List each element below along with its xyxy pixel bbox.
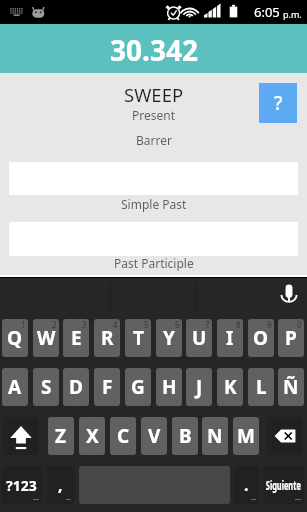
button[interactable]: D xyxy=(63,368,89,406)
staticText: P xyxy=(285,325,297,351)
staticText: 9 xyxy=(267,319,272,330)
button[interactable]: C xyxy=(110,417,136,455)
button[interactable]: H xyxy=(156,368,182,406)
button[interactable]: Q xyxy=(2,319,28,357)
staticText: 4 xyxy=(113,319,118,330)
staticText: SWEEP xyxy=(124,82,184,107)
button[interactable]: Backspace xyxy=(267,417,303,455)
staticText: K xyxy=(224,374,237,400)
button[interactable]: L xyxy=(248,368,274,406)
button[interactable]: Ñ xyxy=(278,368,304,406)
button[interactable]: I xyxy=(217,319,243,357)
button[interactable]: N xyxy=(202,417,228,455)
button[interactable]: E xyxy=(63,319,89,357)
staticText: N xyxy=(207,423,223,449)
staticText: B xyxy=(179,423,192,449)
staticText: Y xyxy=(163,325,175,351)
staticText: Past Participle xyxy=(114,255,194,271)
button[interactable]: X xyxy=(79,417,105,455)
staticText: G xyxy=(131,374,145,400)
staticText: 1 xyxy=(21,319,26,330)
staticText: 8 xyxy=(236,319,241,330)
button[interactable]: U xyxy=(186,319,212,357)
staticText: C xyxy=(117,423,130,449)
staticText: Q xyxy=(7,325,23,351)
button[interactable]: T xyxy=(125,319,151,357)
staticText: X xyxy=(86,423,99,449)
button[interactable]: M xyxy=(233,417,259,455)
button[interactable]: B xyxy=(172,417,198,455)
staticText: D xyxy=(69,374,83,400)
staticText: ? xyxy=(274,90,283,116)
button[interactable]: G xyxy=(125,368,151,406)
staticText: 0 xyxy=(297,319,302,330)
staticText: 6 xyxy=(175,319,180,330)
button[interactable]: ? xyxy=(259,83,297,123)
staticText: I xyxy=(226,325,234,351)
staticText: E xyxy=(71,325,82,351)
staticText: 2 xyxy=(52,319,57,330)
staticText: p.m. xyxy=(283,8,302,20)
staticText: V xyxy=(148,423,161,449)
staticText: T xyxy=(133,325,144,351)
button[interactable]: Voice input xyxy=(281,281,297,307)
staticText: O xyxy=(253,325,269,351)
staticText: F xyxy=(102,374,113,400)
staticText: S xyxy=(41,374,52,400)
staticText: R xyxy=(101,325,114,351)
staticText: Siguiente xyxy=(266,477,301,493)
button[interactable]: W xyxy=(33,319,59,357)
button[interactable]: R xyxy=(94,319,120,357)
button[interactable]: S xyxy=(33,368,59,406)
button[interactable]: P xyxy=(278,319,304,357)
staticText: 3 xyxy=(82,319,87,330)
staticText: . xyxy=(244,474,249,496)
staticText: L xyxy=(256,374,267,400)
staticText: , xyxy=(58,474,63,496)
staticText: A xyxy=(8,374,22,400)
button[interactable]: , xyxy=(47,466,74,504)
staticText: Z xyxy=(55,423,67,449)
staticText: W xyxy=(37,325,56,351)
staticText: Simple Past xyxy=(121,196,187,212)
button[interactable]: Shift xyxy=(3,417,39,455)
button[interactable]: A xyxy=(2,368,28,406)
staticText: 6:05 xyxy=(254,3,280,21)
button[interactable]: J xyxy=(186,368,212,406)
staticText: 7 xyxy=(205,319,210,330)
staticText: 30.342 xyxy=(110,31,198,69)
staticText: Barrer xyxy=(136,132,172,148)
staticText: J xyxy=(196,374,203,400)
staticText: M xyxy=(237,423,255,449)
button[interactable]: . xyxy=(233,466,259,504)
staticText: 5 xyxy=(144,319,149,330)
button[interactable]: F xyxy=(94,368,120,406)
button[interactable]: V xyxy=(141,417,167,455)
button[interactable]: K xyxy=(217,368,243,406)
staticText: Present xyxy=(132,107,176,123)
staticText: H xyxy=(162,374,177,400)
staticText: Ñ xyxy=(283,374,299,400)
button[interactable]: O xyxy=(248,319,274,357)
button[interactable]: Y xyxy=(156,319,182,357)
staticText: U xyxy=(192,325,207,351)
button[interactable] xyxy=(1,466,42,504)
staticText: ?123 xyxy=(6,476,37,495)
button[interactable]: Z xyxy=(48,417,74,455)
button[interactable] xyxy=(263,466,304,504)
